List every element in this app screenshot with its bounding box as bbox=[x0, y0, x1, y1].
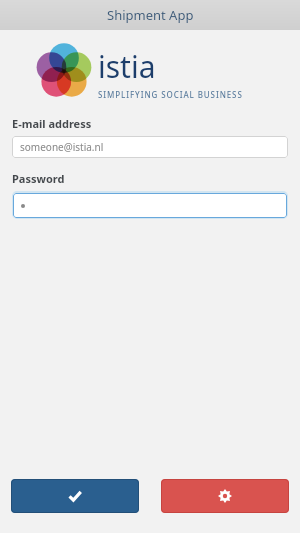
button[interactable]: Confirm bbox=[11, 479, 139, 513]
staticText: someone@istia.nl bbox=[20, 140, 104, 154]
staticText: E-mail address bbox=[12, 116, 92, 131]
button[interactable]: Settings bbox=[161, 479, 289, 513]
staticText: Shipment App bbox=[107, 6, 194, 24]
button[interactable]: someone@istia.nl bbox=[12, 136, 288, 158]
staticText: Password bbox=[12, 171, 65, 186]
staticText: istia bbox=[98, 46, 156, 87]
button[interactable] bbox=[13, 193, 287, 218]
staticText: SIMPLIFYING SOCIAL BUSINESS bbox=[98, 89, 243, 100]
